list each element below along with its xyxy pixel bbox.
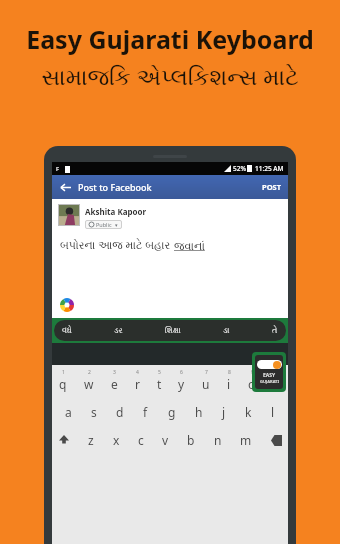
button[interactable]: a [64,404,73,420]
staticText: q [59,376,67,392]
staticText: 5 [158,369,161,376]
button[interactable]: v [160,432,171,448]
staticText: c [138,432,144,448]
staticText: 7 [205,369,208,376]
staticText: t [157,376,162,392]
button[interactable]: ડા [220,327,233,335]
button[interactable]: f [142,404,149,420]
staticText: બપોરના આજ માટે બહાર [60,237,174,252]
staticText: g [168,404,176,420]
staticText: n [214,432,222,448]
staticText: h [195,404,203,420]
staticText: s [91,404,97,420]
button[interactable]: 2 [83,369,95,392]
staticText: b [187,432,195,448]
button[interactable]: z [86,432,96,448]
staticText: w [84,376,94,392]
staticText: v [162,432,169,448]
staticText: r [135,376,140,392]
staticText: o [248,376,256,392]
button[interactable]: x [111,432,122,448]
staticText: j [222,404,226,420]
button[interactable]: Back [52,175,288,199]
staticText: Akshita Kapoor [85,206,147,217]
button[interactable]: Easy Gujarati toggle [255,355,283,389]
staticText: 2 [88,369,91,376]
staticText: y [178,376,185,392]
staticText: i [227,376,231,392]
staticText: 52% [233,164,246,173]
staticText: શિક્ષા [165,327,181,335]
button[interactable]: 3 [110,369,119,392]
button[interactable]: h [194,404,204,420]
button[interactable]: m [238,432,254,448]
staticText: જવાનાં [174,241,205,252]
staticText: e [111,376,118,392]
button[interactable]: POST [262,182,282,192]
staticText: 3 [113,369,116,376]
staticText: 9 [251,369,254,376]
button[interactable]: 8 [226,369,232,392]
button[interactable]: Backspace [268,432,284,448]
staticText: 11:25 AM [255,164,284,173]
staticText: Post to Facebook [78,181,152,193]
staticText: Public [96,221,112,228]
button[interactable]: n [212,432,224,448]
staticText: વધે [62,327,72,335]
staticText: a [65,404,72,420]
button[interactable]: શિક્ષા [162,327,184,335]
button[interactable]: l [270,404,276,420]
button[interactable]: 5 [156,369,163,392]
staticText: 1 [62,369,65,376]
button[interactable]: j [221,404,227,420]
staticText: u [202,376,210,392]
staticText: POST [262,182,282,192]
button[interactable]: 1 [58,369,68,392]
button[interactable]: b [185,432,197,448]
button[interactable]: d [115,404,125,420]
staticText: d [116,404,124,420]
staticText: ડર [114,327,123,335]
staticText: GUJARATI [260,379,279,384]
button[interactable]: Colour [60,298,74,312]
button[interactable]: વધે [59,327,75,335]
staticText: ▾ [115,222,118,228]
staticText: z [88,432,94,448]
button[interactable]: 6 [177,369,186,392]
staticText: સામાજકિ એપ્લકિશન્સ માટે [41,60,299,91]
staticText: તે [272,327,278,335]
button[interactable]: s [90,404,98,420]
button[interactable]: Back [58,180,72,194]
button[interactable]: 4 [134,369,141,392]
staticText: 6 [180,369,183,376]
button[interactable]: k [244,404,253,420]
button[interactable]: Public [89,221,118,228]
staticText: x [113,432,120,448]
staticText: F [56,165,60,173]
button[interactable]: 0 [272,369,282,392]
button[interactable]: તે [269,327,281,335]
button[interactable]: c [136,432,146,448]
button[interactable]: Shift [56,432,72,448]
button[interactable]: 7 [201,369,211,392]
button[interactable]: g [167,404,177,420]
staticText: Easy Gujarati Keyboard [26,22,314,56]
staticText: p [273,376,281,392]
staticText: k [245,404,252,420]
staticText: ડા [223,327,230,335]
staticText: EASY [263,372,276,379]
button[interactable]: 9 [247,369,257,392]
button[interactable]: ડર [111,327,126,335]
staticText: l [271,404,275,420]
staticText: 4 [136,369,139,376]
staticText: 8 [228,369,231,376]
staticText: m [240,432,252,448]
staticText: f [143,404,148,420]
